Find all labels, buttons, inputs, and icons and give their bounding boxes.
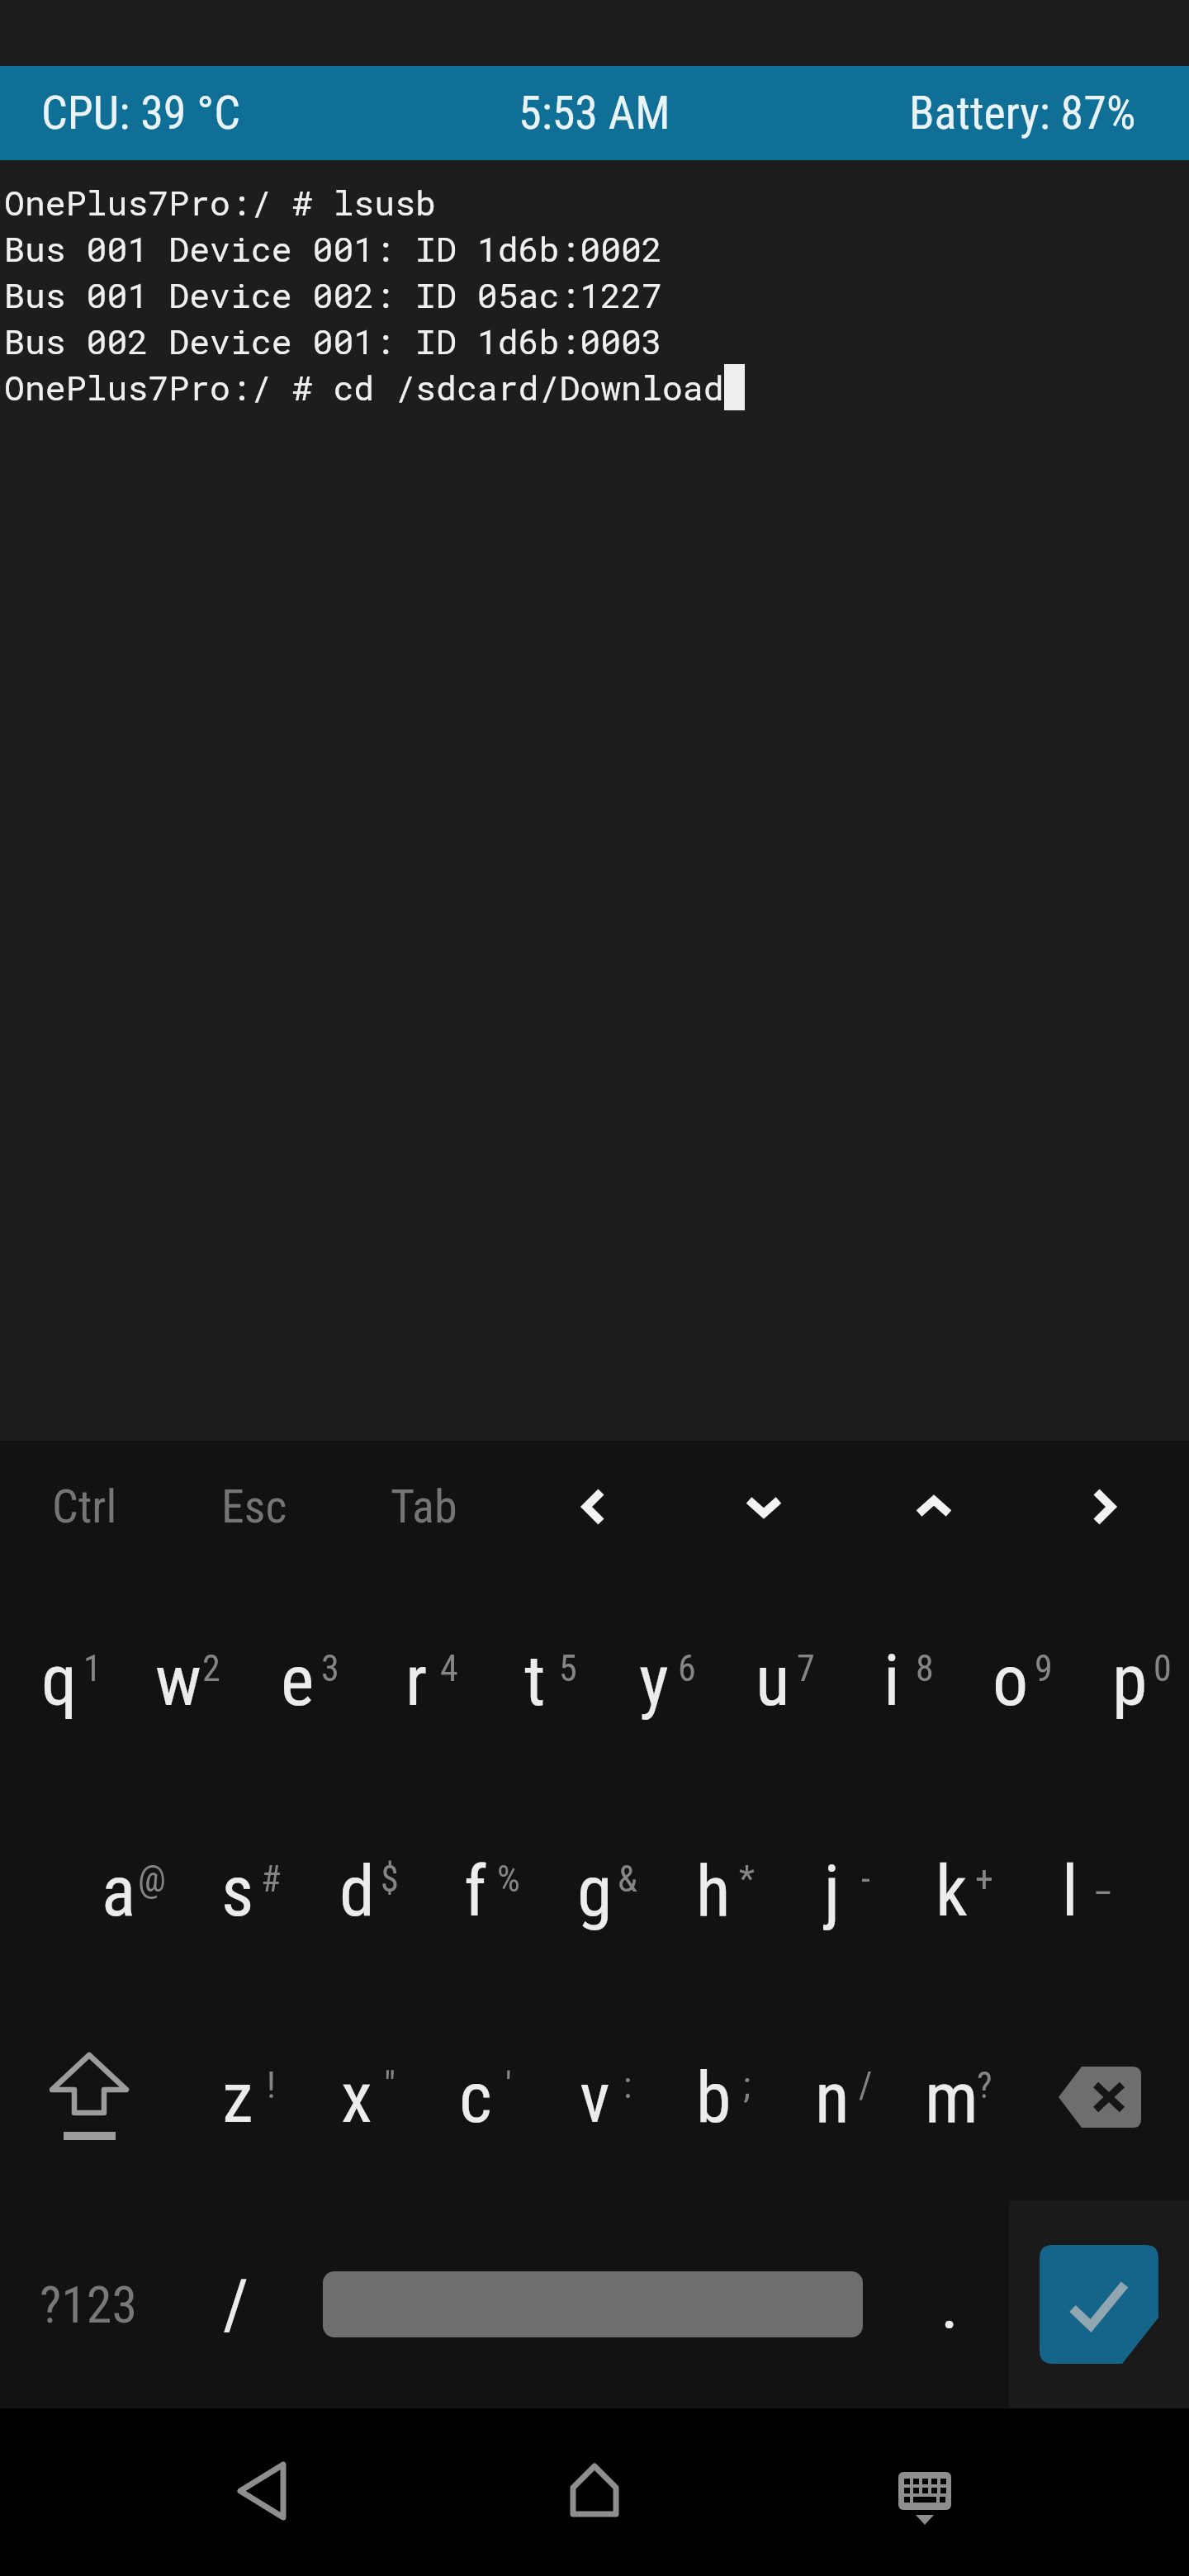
button[interactable]: / — [177, 2200, 296, 2408]
button[interactable]: b — [654, 1994, 773, 2200]
button[interactable] — [561, 2458, 628, 2524]
staticText: 1 — [83, 1647, 102, 1690]
staticText: g — [577, 1849, 613, 1933]
staticText: * — [739, 1858, 755, 1901]
button[interactable] — [231, 2458, 297, 2524]
button[interactable] — [296, 2200, 890, 2408]
button[interactable]: m — [892, 1994, 1011, 2200]
staticText: u — [756, 1639, 790, 1722]
staticText: % — [497, 1858, 520, 1901]
staticText: OnePlus7Pro:/ # lsusb Bus 001 Device 001… — [4, 180, 662, 364]
staticText: 5 — [559, 1647, 577, 1690]
staticText: q — [41, 1639, 78, 1722]
staticText: ' — [505, 2064, 512, 2107]
staticText: Tab — [391, 1480, 457, 1534]
staticText: : — [623, 2064, 632, 2107]
button[interactable]: r — [357, 1573, 476, 1788]
button[interactable]: o — [951, 1573, 1070, 1788]
button[interactable]: c — [416, 1994, 535, 2200]
staticText: 5:53 AM — [519, 86, 670, 140]
staticText: h — [696, 1849, 731, 1933]
staticText: e — [281, 1639, 315, 1722]
button[interactable]: n — [773, 1994, 892, 2200]
button[interactable]: f — [416, 1788, 535, 1994]
staticText: - — [861, 1858, 870, 1901]
staticText: " — [384, 2064, 396, 2107]
button[interactable] — [0, 1994, 178, 2200]
button[interactable]: l — [1011, 1788, 1130, 1994]
staticText: k — [936, 1849, 968, 1933]
staticText: n — [815, 2056, 850, 2139]
staticText: w — [155, 1639, 201, 1722]
staticText: / — [223, 2264, 249, 2345]
staticText: 9 — [1035, 1647, 1053, 1690]
staticText: . — [940, 2264, 959, 2345]
staticText: a — [102, 1849, 136, 1933]
button[interactable]: y — [594, 1573, 713, 1788]
staticText: + — [975, 1858, 993, 1901]
button[interactable] — [849, 1441, 1019, 1573]
button[interactable]: h — [654, 1788, 773, 1994]
button[interactable]: i — [832, 1573, 951, 1788]
staticText: Ctrl — [52, 1480, 117, 1534]
staticText: b — [696, 2056, 732, 2139]
staticText: @ — [138, 1858, 166, 1901]
staticText: x — [341, 2056, 372, 2139]
staticText: l — [1062, 1849, 1078, 1933]
staticText: d — [339, 1849, 375, 1933]
button[interactable]: p — [1070, 1573, 1189, 1788]
staticText: CPU: 39 °C — [41, 86, 240, 140]
staticText: Esc — [221, 1480, 287, 1534]
staticText: 8 — [916, 1647, 934, 1690]
button[interactable]: Ctrl — [0, 1441, 169, 1573]
button[interactable]: a — [59, 1788, 178, 1994]
button[interactable]: q — [0, 1573, 119, 1788]
button[interactable] — [898, 2472, 951, 2526]
staticText: i — [883, 1639, 900, 1722]
staticText: 3 — [321, 1647, 339, 1690]
staticText: j — [824, 1849, 841, 1933]
staticText: ! — [267, 2064, 276, 2107]
staticText: t — [524, 1639, 546, 1722]
button[interactable] — [679, 1441, 849, 1573]
button[interactable]: ?123 — [0, 2200, 177, 2408]
button[interactable]: j — [773, 1788, 892, 1994]
staticText: 7 — [797, 1647, 815, 1690]
staticText: ; — [743, 2064, 751, 2107]
staticText: 4 — [440, 1647, 458, 1690]
button[interactable]: u — [713, 1573, 832, 1788]
button[interactable]: w — [119, 1573, 238, 1788]
staticText: z — [222, 2056, 253, 2139]
staticText: & — [618, 1858, 637, 1901]
staticText: OnePlus7Pro:/ # cd /sdcard/Download — [4, 365, 724, 410]
staticText: 6 — [678, 1647, 696, 1690]
button[interactable]: k — [892, 1788, 1011, 1994]
staticText: _ — [1096, 1858, 1111, 1901]
staticText: ? — [977, 2064, 992, 2107]
button[interactable]: g — [535, 1788, 654, 1994]
staticText: # — [261, 1858, 282, 1901]
staticText: r — [405, 1639, 428, 1722]
button[interactable]: e — [238, 1573, 357, 1788]
staticText: s — [221, 1849, 254, 1933]
staticText: o — [992, 1639, 1029, 1722]
button[interactable]: x — [297, 1994, 416, 2200]
button[interactable]: v — [535, 1994, 654, 2200]
button[interactable] — [1009, 2200, 1189, 2408]
staticText: 2 — [202, 1647, 220, 1690]
button[interactable] — [1019, 1441, 1189, 1573]
staticText: ?123 — [40, 2275, 138, 2335]
button[interactable]: t — [476, 1573, 594, 1788]
button[interactable] — [1011, 1994, 1189, 2200]
button[interactable]: . — [890, 2200, 1009, 2408]
button[interactable]: d — [297, 1788, 416, 1994]
staticText: v — [580, 2056, 610, 2139]
button[interactable]: s — [178, 1788, 297, 1994]
button[interactable]: Esc — [169, 1441, 339, 1573]
button[interactable] — [509, 1441, 679, 1573]
button[interactable]: z — [178, 1994, 297, 2200]
staticText: Battery: 87% — [909, 86, 1136, 140]
staticText: 0 — [1153, 1647, 1172, 1690]
staticText: c — [459, 2056, 492, 2139]
button[interactable]: Tab — [339, 1441, 509, 1573]
